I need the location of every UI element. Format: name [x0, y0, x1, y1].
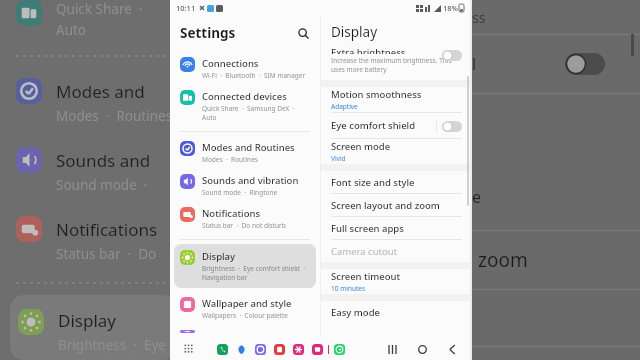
staticText: Modes · Routines [202, 155, 258, 164]
staticText: Extra brightness [331, 46, 406, 54]
button[interactable]: Extra brightness [321, 46, 470, 80]
button[interactable]: Camera cutout [321, 240, 470, 262]
button[interactable]: Eye comfort shield [321, 113, 470, 138]
staticText: Screen mode [331, 140, 391, 153]
staticText: Quick Share · Sams [56, 0, 176, 18]
button[interactable]: Modes and Routines [170, 136, 320, 169]
staticText: Modes and Rou [56, 80, 176, 103]
button[interactable]: Screen mode [321, 139, 470, 164]
staticText: Font size and style [331, 176, 415, 189]
staticText: Connections [202, 57, 259, 70]
button[interactable] [442, 50, 462, 61]
staticText: Sounds and vibr [56, 149, 176, 172]
staticText: 10:11 [176, 3, 196, 13]
staticText: Sound mode · Ringt [56, 176, 176, 194]
staticText: Sounds and vibration [202, 174, 299, 187]
button[interactable] [312, 344, 323, 355]
staticText: Motion smoothness [331, 88, 422, 101]
staticText: Camera cutout [331, 245, 398, 258]
button[interactable] [255, 344, 266, 355]
button[interactable]: Screen layout and zoom [321, 194, 470, 216]
staticText: Increase the maximum brightness. This [331, 56, 452, 65]
staticText: Screen timeout [331, 270, 401, 283]
staticText: Auto [202, 113, 217, 122]
staticText: Notifications [56, 218, 158, 241]
staticText: ss [472, 8, 486, 27]
staticText: Notifications [202, 207, 261, 220]
staticText: Brightness · Eye co [58, 336, 176, 354]
button[interactable] [217, 344, 228, 355]
button[interactable]: Wallpaper and style [170, 292, 320, 325]
staticText: Settings [180, 24, 236, 42]
staticText: Quick Share · Samsung DeX · Android [202, 104, 314, 113]
staticText: Navigation bar [202, 273, 248, 282]
button[interactable]: Motion smoothness [321, 87, 470, 112]
button[interactable]: Connected devices [170, 85, 320, 127]
staticText: Adaptive [331, 102, 358, 111]
staticText: Modes and Routines [202, 141, 295, 154]
button[interactable] [334, 344, 345, 355]
staticText: Wi-Fi · Bluetooth · SIM manager [202, 71, 306, 80]
staticText: zoom [478, 247, 528, 273]
staticText: Connected devices [202, 90, 287, 103]
button[interactable]: Sounds and vibr [0, 147, 176, 194]
staticText: 10 minutes [331, 284, 366, 293]
button[interactable]: Screen timeout [321, 269, 470, 294]
staticText: Wallpapers · Colour palette [202, 311, 288, 320]
staticText: Vivid [331, 154, 346, 163]
button[interactable]: Back [444, 341, 460, 357]
staticText: Brightness · Eye comfort shield · [202, 264, 305, 273]
staticText: e [472, 186, 482, 208]
staticText: Auto [56, 21, 87, 39]
button[interactable]: Search [294, 24, 312, 42]
staticText: Display [202, 250, 236, 263]
staticText: Modes · Routines [56, 107, 173, 125]
button[interactable]: Notifications [170, 202, 320, 235]
staticText: Screen layout and zoom [331, 199, 440, 212]
staticText: Display [331, 23, 378, 41]
button[interactable]: Modes and Rou [0, 78, 176, 125]
button[interactable] [274, 344, 285, 355]
staticText: l [472, 53, 477, 75]
button[interactable] [293, 344, 304, 355]
button[interactable] [565, 53, 605, 75]
staticText: Eye comfort shield [331, 119, 416, 132]
button[interactable]: Notifications [0, 216, 176, 263]
button[interactable]: Sounds and vibration [170, 169, 320, 202]
staticText: Easy mode [331, 306, 380, 319]
button[interactable]: Display [10, 295, 176, 360]
button[interactable]: Apps [184, 344, 195, 355]
staticText: Status bar · Do not disturb [202, 221, 286, 230]
button[interactable]: Themes [170, 325, 320, 338]
button[interactable]: Full screen apps [321, 217, 470, 239]
staticText: Sound mode · Ringtone [202, 188, 278, 197]
button[interactable]: Home [414, 341, 430, 357]
staticText: 18% [443, 3, 458, 13]
button[interactable]: Font size and style [321, 171, 470, 193]
staticText: Full screen apps [331, 222, 404, 235]
button[interactable]: Recents [384, 341, 400, 357]
staticText: uses more battery [331, 65, 387, 74]
staticText: Display [58, 309, 116, 332]
staticText: Status bar · Do not [56, 245, 176, 263]
button[interactable] [442, 121, 462, 132]
button[interactable]: Easy mode [321, 301, 470, 323]
button[interactable]: Connections [170, 52, 320, 85]
button[interactable]: Display [174, 244, 316, 288]
staticText: Wallpaper and style [202, 297, 292, 310]
